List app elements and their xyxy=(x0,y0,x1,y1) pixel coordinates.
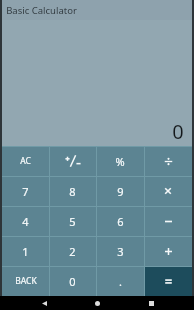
staticText: AC xyxy=(20,155,31,167)
button[interactable]: Equals xyxy=(144,266,192,296)
staticText: 0 xyxy=(69,274,76,289)
button[interactable]: 8 xyxy=(49,176,96,206)
button[interactable]: Recents xyxy=(141,296,161,310)
button[interactable]: Add xyxy=(144,236,192,266)
button[interactable]: 2 xyxy=(49,236,96,266)
button[interactable]: 4 xyxy=(2,206,49,236)
button[interactable]: 9 xyxy=(96,176,144,206)
button[interactable]: Back xyxy=(34,296,54,310)
button[interactable]: 7 xyxy=(2,176,49,206)
staticText: 3 xyxy=(117,244,124,259)
staticText: 9 xyxy=(117,184,124,199)
button[interactable]: 6 xyxy=(96,206,144,236)
staticText: % xyxy=(115,154,125,169)
button[interactable]: Plus minus xyxy=(49,146,96,176)
staticText: . xyxy=(119,274,122,289)
staticText: Basic Calculator xyxy=(6,4,77,17)
button[interactable]: Multiply xyxy=(144,176,192,206)
button[interactable]: 5 xyxy=(49,206,96,236)
button[interactable]: . xyxy=(96,266,144,296)
button[interactable]: % xyxy=(96,146,144,176)
staticText: 2 xyxy=(69,244,76,259)
staticText: 6 xyxy=(117,214,124,229)
button[interactable]: Home xyxy=(87,296,107,310)
staticText: 7 xyxy=(22,184,29,199)
button[interactable]: Divide xyxy=(144,146,192,176)
button[interactable]: Subtract xyxy=(144,206,192,236)
button[interactable]: BACK xyxy=(2,266,49,296)
button[interactable]: 3 xyxy=(96,236,144,266)
staticText: 0 xyxy=(172,118,184,145)
staticText: 5 xyxy=(69,214,76,229)
staticText: 1 xyxy=(22,244,29,259)
staticText: 8 xyxy=(69,184,76,199)
button[interactable]: AC xyxy=(2,146,49,176)
staticText: BACK xyxy=(15,275,37,287)
button[interactable]: 1 xyxy=(2,236,49,266)
button[interactable]: 0 xyxy=(49,266,96,296)
staticText: 4 xyxy=(22,214,29,229)
